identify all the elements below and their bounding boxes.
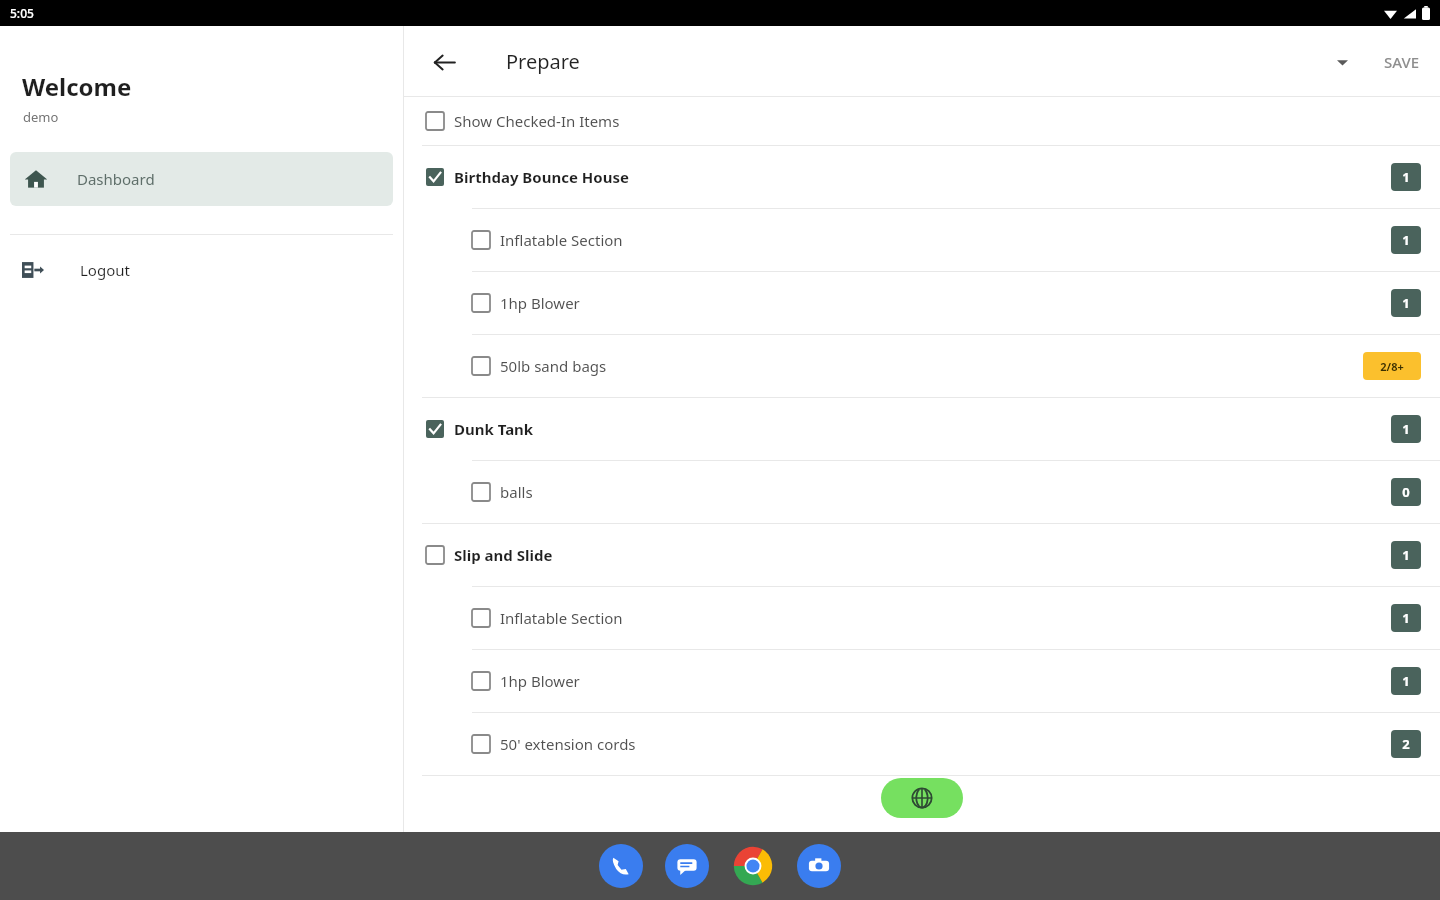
staticText: 1 bbox=[1402, 294, 1410, 312]
button[interactable]: 2/8+ bbox=[1363, 352, 1421, 380]
staticText: 1 bbox=[1402, 420, 1410, 438]
staticText: 1hp Blower bbox=[500, 293, 580, 313]
button[interactable]: Scan bbox=[881, 778, 963, 818]
button[interactable]: Inflatable Section bbox=[404, 209, 1440, 271]
staticText: 1 bbox=[1402, 609, 1410, 627]
staticText: balls bbox=[500, 482, 533, 502]
staticText: Birthday Bounce House bbox=[454, 167, 629, 187]
staticText: SAVE bbox=[1384, 52, 1420, 72]
staticText: 0 bbox=[1402, 483, 1410, 501]
staticText: Dashboard bbox=[77, 169, 155, 189]
button[interactable]: Slip and Slide bbox=[404, 524, 1440, 586]
staticText: Logout bbox=[80, 260, 130, 280]
button[interactable]: 1 bbox=[1391, 415, 1421, 443]
staticText: 1 bbox=[1402, 546, 1410, 564]
staticText: demo bbox=[23, 108, 59, 126]
button[interactable]: Show Checked-In Items bbox=[404, 97, 1440, 145]
button[interactable]: 1 bbox=[1391, 541, 1421, 569]
button[interactable]: Camera bbox=[797, 844, 841, 888]
button[interactable]: 50lb sand bags bbox=[404, 335, 1440, 397]
button[interactable]: Birthday Bounce House bbox=[404, 146, 1440, 208]
button[interactable]: 1 bbox=[1391, 604, 1421, 632]
button[interactable]: 0 bbox=[1391, 478, 1421, 506]
button[interactable]: Dunk Tank bbox=[404, 398, 1440, 460]
staticText: 1hp Blower bbox=[500, 671, 580, 691]
button[interactable]: 50' extension cords bbox=[404, 713, 1440, 775]
button[interactable]: 1 bbox=[1391, 667, 1421, 695]
staticText: Inflatable Section bbox=[500, 608, 623, 628]
staticText: 1 bbox=[1402, 168, 1410, 186]
button[interactable]: 1hp Blower bbox=[404, 650, 1440, 712]
staticText: 50' extension cords bbox=[500, 734, 636, 754]
button[interactable]: More options bbox=[1322, 42, 1362, 82]
staticText: Dunk Tank bbox=[454, 419, 534, 439]
button[interactable]: SAVE bbox=[1378, 44, 1426, 80]
button[interactable]: 1 bbox=[1391, 289, 1421, 317]
staticText: 1 bbox=[1402, 231, 1410, 249]
staticText: Slip and Slide bbox=[454, 545, 553, 565]
button[interactable]: 2 bbox=[1391, 730, 1421, 758]
button[interactable]: Inflatable Section bbox=[404, 587, 1440, 649]
button[interactable]: 1 bbox=[1391, 163, 1421, 191]
staticText: 1 bbox=[1402, 672, 1410, 690]
staticText: Show Checked-In Items bbox=[454, 111, 620, 131]
button[interactable]: balls bbox=[404, 461, 1440, 523]
staticText: Welcome bbox=[22, 70, 132, 103]
staticText: Inflatable Section bbox=[500, 230, 623, 250]
staticText: Prepare bbox=[506, 48, 580, 75]
button[interactable]: Messages bbox=[665, 844, 709, 888]
staticText: 2/8+ bbox=[1380, 359, 1404, 374]
button[interactable]: Phone bbox=[599, 844, 643, 888]
staticText: 5:05 bbox=[10, 5, 34, 21]
button[interactable]: 1 bbox=[1391, 226, 1421, 254]
staticText: 50lb sand bags bbox=[500, 356, 607, 376]
button[interactable]: 1hp Blower bbox=[404, 272, 1440, 334]
button[interactable]: Dashboard bbox=[10, 152, 393, 206]
button[interactable]: Back bbox=[422, 40, 466, 84]
button[interactable]: Logout bbox=[0, 235, 403, 305]
staticText: 2 bbox=[1402, 735, 1410, 753]
button[interactable]: Chrome bbox=[731, 844, 775, 888]
